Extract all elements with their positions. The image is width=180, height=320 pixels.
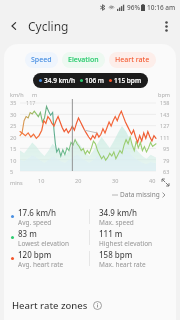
- staticText: 10:16 am: [147, 3, 176, 12]
- staticText: Data missing: [120, 190, 160, 199]
- staticText: Speed: [31, 55, 52, 65]
- staticText: 111 m: [99, 228, 123, 239]
- staticText: 106 m: [85, 76, 104, 85]
- staticText: 35: [10, 99, 17, 106]
- staticText: 158: [160, 99, 170, 106]
- staticText: m: [32, 91, 38, 98]
- staticText: mins: [10, 179, 23, 186]
- button[interactable]: Back: [4, 16, 24, 36]
- button[interactable]: 17.6 km/h: [4, 206, 89, 227]
- staticText: 111: [160, 134, 170, 141]
- button[interactable]: 120 bpm: [4, 248, 89, 269]
- staticText: 117: [26, 99, 36, 106]
- staticText: 120 bpm: [18, 249, 52, 260]
- staticText: Max. heart rate: [99, 260, 146, 269]
- staticText: Elevation: [68, 55, 99, 65]
- staticText: 79: [163, 157, 170, 164]
- staticText: Cycling: [28, 18, 69, 34]
- staticText: 63: [163, 168, 170, 175]
- staticText: 25: [10, 122, 17, 129]
- staticText: Avg. heart rate: [18, 260, 64, 269]
- staticText: 143: [160, 111, 170, 118]
- button[interactable]: Heart rate zones: [4, 290, 176, 320]
- staticText: 15: [10, 145, 17, 152]
- staticText: 30: [10, 111, 17, 118]
- staticText: 83 m: [18, 228, 37, 239]
- button[interactable]: Heart rate: [109, 52, 156, 68]
- button[interactable]: Expand chart: [160, 177, 170, 187]
- staticText: Heart rate: [115, 55, 150, 65]
- staticText: 96%: [127, 3, 140, 12]
- button[interactable]: 111 m: [90, 227, 176, 248]
- staticText: 10: [10, 157, 17, 164]
- staticText: 34.9 km/h: [44, 76, 75, 85]
- button[interactable]: Elevation: [62, 52, 105, 68]
- button[interactable]: 34.9 km/h: [90, 206, 176, 227]
- staticText: 20: [10, 134, 17, 141]
- staticText: 127: [160, 122, 170, 129]
- button[interactable]: Data missing: [110, 189, 168, 200]
- button[interactable]: 158 bpm: [90, 248, 176, 269]
- staticText: 17.6 km/h: [18, 207, 57, 218]
- staticText: Avg. speed: [18, 218, 52, 227]
- staticText: 115 bpm: [114, 76, 142, 85]
- staticText: Highest elevation: [99, 239, 153, 248]
- staticText: Max. speed: [99, 218, 134, 227]
- staticText: 10: [38, 177, 45, 184]
- staticText: km/h: [10, 91, 24, 98]
- staticText: 95: [163, 145, 170, 152]
- staticText: Heart rate zones: [12, 299, 88, 312]
- staticText: 30: [112, 177, 119, 184]
- staticText: 158 bpm: [99, 249, 133, 260]
- staticText: 34.9 km/h: [99, 207, 138, 218]
- staticText: Lowest elevation: [18, 239, 69, 248]
- staticText: 40: [149, 177, 156, 184]
- staticText: 20: [75, 177, 82, 184]
- staticText: bpm: [158, 91, 170, 98]
- button[interactable]: More options: [156, 16, 176, 36]
- staticText: 5: [10, 168, 14, 175]
- button[interactable]: 83 m: [4, 227, 89, 248]
- button[interactable]: Speed: [25, 52, 58, 68]
